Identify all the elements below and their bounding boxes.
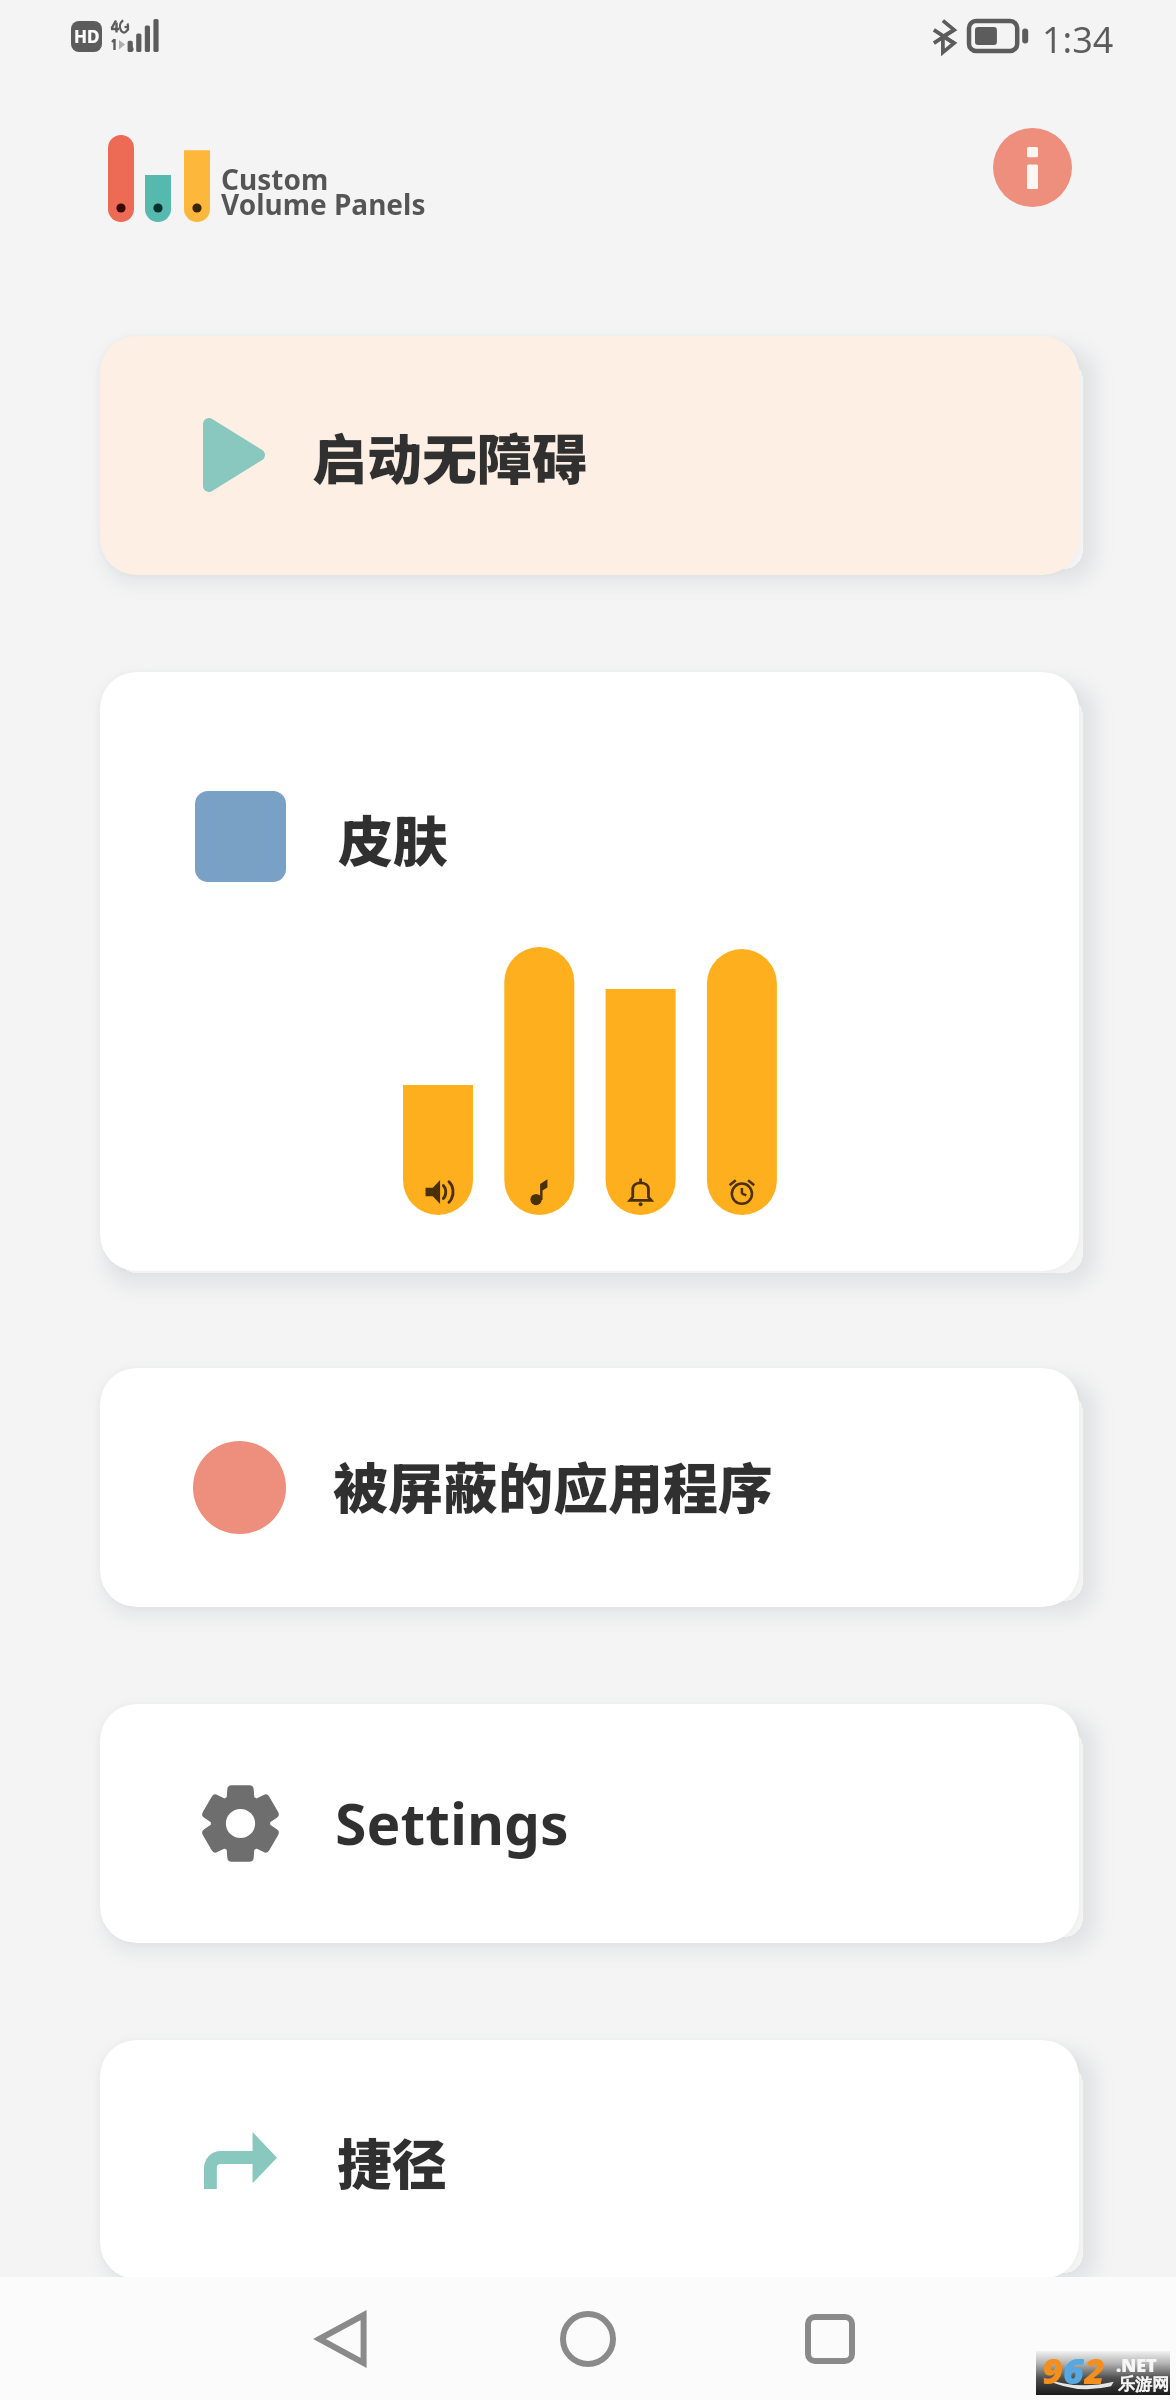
button[interactable]: Recents xyxy=(715,2277,945,2400)
staticText: 启动无障碍 xyxy=(312,416,588,496)
staticText: Custom Volume Panels xyxy=(221,160,426,223)
staticText: Settings xyxy=(335,1784,569,1862)
button[interactable]: Information xyxy=(993,128,1072,207)
button[interactable]: Home xyxy=(473,2277,703,2400)
staticText: 皮肤 xyxy=(338,798,449,878)
staticText: 被屏蔽的应用程序 xyxy=(333,1445,774,1525)
staticText: 1:34 xyxy=(1042,15,1114,64)
button[interactable]: Settings xyxy=(100,1704,1079,1943)
button[interactable]: Back xyxy=(226,2277,456,2400)
staticText: HD xyxy=(74,25,100,48)
staticText: 9 xyxy=(1042,2346,1063,2390)
button[interactable]: 启动无障碍 xyxy=(100,336,1079,575)
staticText: 乐游网 xyxy=(1118,2374,1169,2395)
staticText: 6 xyxy=(1063,2346,1084,2390)
button[interactable]: 皮肤 xyxy=(100,672,1079,1271)
staticText: 捷径 xyxy=(337,2121,448,2201)
staticText: .NET xyxy=(1116,2353,1157,2378)
button[interactable]: 捷径 xyxy=(100,2040,1079,2279)
staticText: 2 xyxy=(1084,2346,1105,2390)
button[interactable]: 被屏蔽的应用程序 xyxy=(100,1368,1079,1607)
